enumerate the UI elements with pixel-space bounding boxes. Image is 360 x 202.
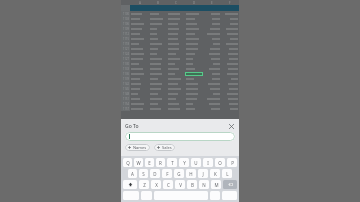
staticText: W <box>136 160 141 166</box>
staticText: 1124 <box>123 52 129 56</box>
staticText: Q <box>126 160 130 166</box>
staticText: G <box>177 171 181 177</box>
staticText: 1115 <box>123 37 129 41</box>
button[interactable]: E <box>145 158 154 167</box>
button[interactable]: Z <box>139 180 149 189</box>
staticText: 1100 <box>123 12 129 16</box>
button[interactable]: L <box>222 169 232 178</box>
staticText: Z <box>143 182 146 188</box>
staticText: P <box>231 160 234 166</box>
button[interactable]: P <box>227 158 237 167</box>
staticText: 1142 <box>123 82 129 86</box>
button[interactable]: T <box>167 158 177 167</box>
button[interactable]: S <box>139 169 148 178</box>
button[interactable]: V <box>175 180 185 189</box>
button[interactable]: I <box>203 158 213 167</box>
staticText: Names <box>133 145 147 150</box>
button[interactable]: R <box>156 158 165 167</box>
button[interactable]: C <box>163 180 173 189</box>
staticText: D <box>193 1 196 5</box>
staticText: 1109 <box>123 27 129 31</box>
staticText: 1127 <box>123 57 129 61</box>
staticText: J <box>202 171 204 177</box>
button[interactable]: J <box>198 169 208 178</box>
staticText: A <box>139 1 141 5</box>
staticText: Sales <box>162 145 172 150</box>
button[interactable]: Q <box>123 158 132 167</box>
staticText: M <box>214 182 219 188</box>
staticText: E <box>211 1 213 5</box>
staticText: 1121 <box>123 47 129 51</box>
staticText: Go To <box>125 123 227 130</box>
staticText: 1139 <box>123 77 129 81</box>
button[interactable]: A <box>128 169 137 178</box>
staticText: 1112 <box>123 32 129 36</box>
staticText: R <box>159 160 162 166</box>
staticText: 1103 <box>123 17 129 21</box>
button[interactable]: Backspace <box>223 180 237 189</box>
button[interactable]: B <box>187 180 197 189</box>
button[interactable]: Sales <box>154 144 175 151</box>
staticText: L <box>226 171 229 177</box>
button[interactable]: O <box>215 158 225 167</box>
staticText: 1148 <box>123 92 129 96</box>
button[interactable] <box>125 132 235 141</box>
staticText: N <box>202 182 206 188</box>
staticText: I <box>207 160 209 166</box>
staticText: D <box>153 171 157 177</box>
button[interactable]: X <box>151 180 161 189</box>
button[interactable]: N <box>199 180 209 189</box>
staticText: 1157 <box>123 107 129 111</box>
staticText: A <box>131 171 134 177</box>
button[interactable]: U <box>191 158 201 167</box>
staticText: 1154 <box>123 102 129 106</box>
button[interactable]: Key <box>210 191 220 200</box>
staticText: B <box>157 1 159 5</box>
staticText: O <box>218 160 222 166</box>
button[interactable]: Names <box>125 144 150 151</box>
button[interactable]: G <box>174 169 184 178</box>
button[interactable]: Key <box>123 191 139 200</box>
staticText: V <box>179 182 182 188</box>
button[interactable]: D <box>150 169 160 178</box>
staticText: H <box>189 171 193 177</box>
staticText: 1151 <box>123 97 129 101</box>
staticText: Y <box>183 160 186 166</box>
staticText: 1133 <box>123 67 129 71</box>
staticText: 1106 <box>123 22 129 26</box>
staticText: U <box>194 160 198 166</box>
staticText: E <box>148 160 151 166</box>
staticText: F <box>166 171 169 177</box>
button[interactable]: K <box>210 169 220 178</box>
button[interactable]: Y <box>179 158 189 167</box>
staticText: S <box>142 171 145 177</box>
staticText: 1136 <box>123 72 129 76</box>
button[interactable]: Key <box>141 191 152 200</box>
staticText: 1145 <box>123 87 129 91</box>
button[interactable]: Close <box>227 122 235 130</box>
button[interactable]: H <box>186 169 196 178</box>
button[interactable]: F <box>162 169 172 178</box>
staticText: F <box>229 1 231 5</box>
staticText: B <box>191 182 194 188</box>
button[interactable]: Key <box>222 191 237 200</box>
button[interactable]: M <box>211 180 221 189</box>
staticText: 1118 <box>123 42 129 46</box>
staticText: X <box>155 182 158 188</box>
staticText: K <box>214 171 217 177</box>
staticText: T <box>171 160 174 166</box>
button[interactable]: Shift <box>123 180 137 189</box>
staticText: C <box>167 182 170 188</box>
staticText: 1130 <box>123 62 129 66</box>
staticText: C <box>175 1 177 5</box>
button[interactable]: W <box>134 158 143 167</box>
